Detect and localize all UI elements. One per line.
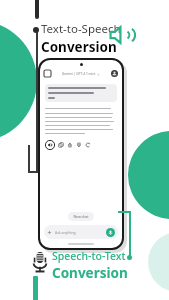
- staticText: Text-to-Speech: [41, 21, 121, 37]
- button[interactable]: [45, 84, 117, 102]
- button[interactable]: Voice input: [106, 228, 115, 237]
- button[interactable]: Speech-to-Text: [52, 249, 128, 282]
- staticText: Conversion: [41, 38, 117, 56]
- button[interactable]: Read aloud: [45, 140, 55, 150]
- button[interactable]: Text-to-Speech: [41, 21, 121, 56]
- button[interactable]: up: [67, 142, 73, 148]
- staticText: Conversion: [52, 264, 128, 282]
- button[interactable]: refresh: [85, 142, 91, 148]
- staticText: Speech-to-Text: [52, 249, 126, 263]
- button[interactable]: Microphone input: [32, 251, 48, 273]
- staticText: Ask anything: [55, 230, 76, 235]
- button[interactable]: Speaker output: [109, 24, 135, 46]
- button[interactable]: Gemini | GPT-4.1 mini: [59, 71, 103, 77]
- button[interactable]: Menu: [44, 70, 51, 77]
- staticText: New chat: [73, 214, 89, 219]
- button[interactable]: down: [76, 142, 82, 148]
- button[interactable]: Ask anything: [44, 225, 118, 239]
- staticText: Gemini | GPT-4.1 mini: [62, 72, 96, 76]
- button[interactable]: New chat: [68, 212, 94, 221]
- button[interactable]: copy: [58, 142, 64, 148]
- button[interactable]: Profile: [111, 70, 118, 77]
